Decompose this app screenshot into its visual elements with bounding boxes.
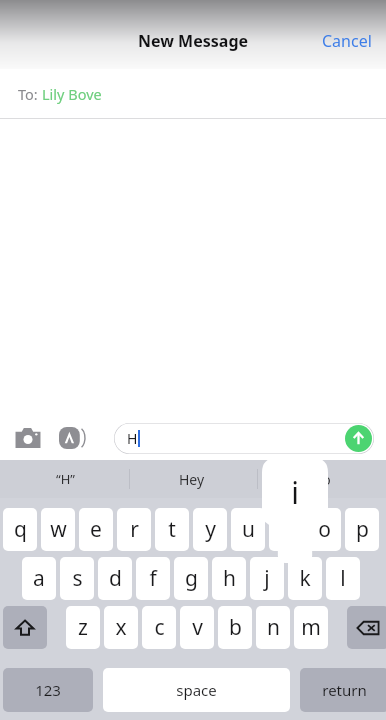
button[interactable]: space [103, 668, 290, 712]
staticText: b [229, 613, 242, 642]
staticText: f [149, 564, 157, 593]
button[interactable]: Send [345, 425, 372, 452]
staticText: p [356, 515, 369, 544]
staticText: H [127, 429, 138, 448]
staticText: u [242, 515, 255, 544]
staticText: o [318, 515, 331, 544]
staticText: j [264, 564, 270, 593]
button[interactable]: n [256, 606, 290, 649]
button[interactable]: x [104, 606, 138, 649]
button[interactable]: r [117, 508, 151, 551]
staticText: y [205, 515, 216, 544]
staticText: “H” [56, 470, 75, 488]
staticText: z [78, 613, 88, 642]
staticText: x [115, 613, 127, 642]
button[interactable]: Backspace [347, 606, 386, 649]
staticText: g [185, 564, 198, 593]
button[interactable]: a [22, 557, 56, 600]
staticText: d [109, 564, 122, 593]
button[interactable]: H [114, 423, 374, 454]
button[interactable]: f [136, 557, 170, 600]
button[interactable]: 123 [3, 668, 93, 712]
button[interactable]: z [66, 606, 100, 649]
staticText: w [50, 515, 67, 544]
button[interactable]: To: [0, 69, 386, 119]
button[interactable]: Cancel [308, 24, 386, 58]
button[interactable]: g [174, 557, 208, 600]
button[interactable]: c [142, 606, 176, 649]
staticText: r [130, 515, 139, 544]
button[interactable]: h [212, 557, 246, 600]
staticText: New Message [138, 30, 249, 52]
button[interactable]: k [288, 557, 322, 600]
button[interactable]: return [300, 668, 386, 712]
button[interactable]: Camera [8, 418, 48, 458]
button[interactable]: u [231, 508, 265, 551]
staticText: v [192, 613, 203, 642]
button[interactable]: o [307, 508, 341, 551]
staticText: l [340, 564, 346, 593]
staticText: a [33, 564, 45, 593]
staticText: Ho [312, 470, 331, 489]
button[interactable]: j [250, 557, 284, 600]
staticText: e [90, 515, 102, 544]
button[interactable]: p [345, 508, 379, 551]
button[interactable]: s [60, 557, 94, 600]
button[interactable]: Shift [3, 606, 47, 649]
staticText: c [154, 613, 165, 642]
button[interactable]: w [41, 508, 75, 551]
staticText: Lily Bove [42, 84, 102, 104]
staticText: q [14, 515, 27, 544]
button[interactable]: m [294, 606, 328, 649]
button[interactable]: b [218, 606, 252, 649]
button[interactable]: Apps [54, 420, 90, 456]
staticText: Hey [179, 470, 205, 489]
staticText: To: [18, 84, 42, 104]
staticText: i [262, 472, 328, 513]
button[interactable]: e [79, 508, 113, 551]
staticText: t [168, 515, 176, 544]
staticText: 123 [35, 680, 61, 700]
button[interactable]: y [193, 508, 227, 551]
staticText: k [299, 564, 311, 593]
button[interactable]: q [3, 508, 37, 551]
button[interactable]: t [155, 508, 189, 551]
staticText: h [223, 564, 236, 593]
staticText: m [301, 613, 321, 642]
staticText: Cancel [322, 30, 372, 52]
button[interactable]: l [326, 557, 360, 600]
button[interactable]: v [180, 606, 214, 649]
staticText: s [72, 564, 83, 593]
staticText: n [267, 613, 280, 642]
staticText: space [176, 680, 217, 700]
button[interactable]: d [98, 557, 132, 600]
staticText: return [322, 680, 367, 700]
